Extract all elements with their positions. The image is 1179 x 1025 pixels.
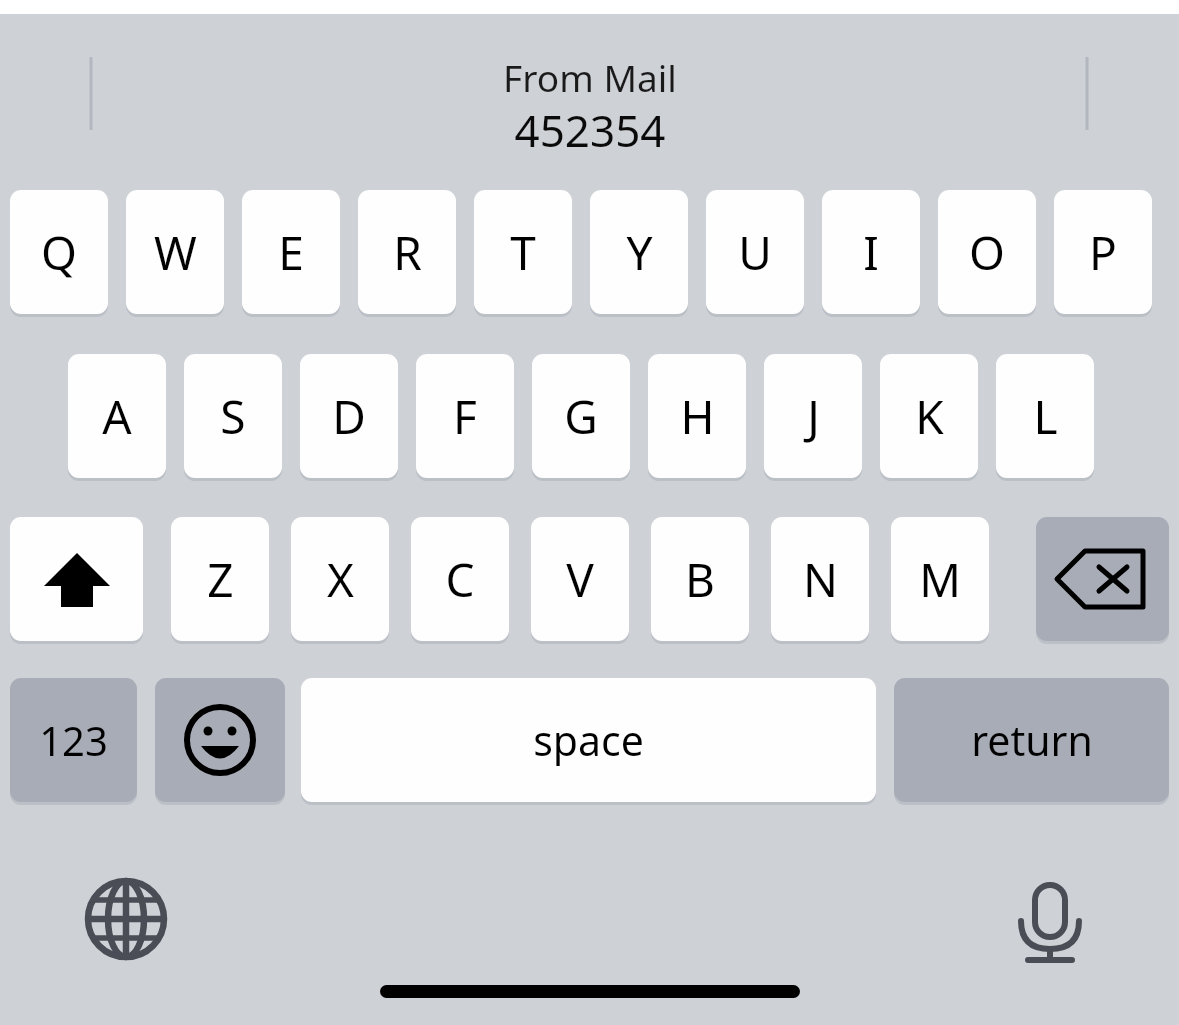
staticText: return [971,712,1093,768]
button[interactable]: R [358,190,456,314]
button[interactable]: I [822,190,920,314]
button[interactable]: Switch keyboard [66,859,186,979]
button[interactable]: Delete [1036,517,1169,641]
staticText: M [919,548,961,611]
button[interactable]: T [474,190,572,314]
staticText: H [680,385,715,448]
button[interactable]: Dictation [990,859,1110,979]
button[interactable]: 123 [10,678,137,802]
button[interactable]: Z [171,517,269,641]
staticText: From Mail [503,52,677,102]
staticText: F [453,385,477,448]
button[interactable]: N [771,517,869,641]
button[interactable]: S [184,354,282,478]
staticText: D [332,385,366,448]
staticText: V [566,548,594,611]
button[interactable]: E [242,190,340,314]
button[interactable]: X [291,517,389,641]
staticText: T [510,221,536,284]
button[interactable]: Emoji [155,678,285,802]
staticText: A [102,385,132,448]
staticText: Z [207,548,234,611]
button[interactable]: From Mail [340,44,840,154]
button[interactable]: H [648,354,746,478]
button[interactable]: K [880,354,978,478]
staticText: K [915,385,944,448]
button[interactable]: L [996,354,1094,478]
button[interactable]: A [68,354,166,478]
button[interactable]: M [891,517,989,641]
button[interactable]: W [126,190,224,314]
button[interactable]: F [416,354,514,478]
button[interactable]: Q [10,190,108,314]
button[interactable]: V [531,517,629,641]
staticText: Y [626,221,653,284]
staticText: B [685,548,715,611]
staticText: O [969,221,1005,284]
button[interactable]: space [301,678,876,802]
staticText: L [1033,385,1058,448]
staticText: N [803,548,838,611]
staticText: U [738,221,772,284]
staticText: J [807,385,820,448]
button[interactable]: Y [590,190,688,314]
staticText: G [564,385,598,448]
staticText: W [154,221,197,284]
button[interactable]: D [300,354,398,478]
staticText: space [533,712,644,768]
staticText: 452354 [514,100,666,160]
button[interactable]: B [651,517,749,641]
button[interactable]: C [411,517,509,641]
staticText: 123 [39,713,108,767]
staticText: S [220,385,246,448]
staticText: I [863,221,879,284]
button[interactable]: Shift [10,517,143,641]
button[interactable]: J [764,354,862,478]
staticText: P [1089,221,1117,284]
button[interactable]: P [1054,190,1152,314]
staticText: Q [41,221,77,284]
staticText: X [327,548,354,611]
staticText: C [445,548,475,611]
button[interactable]: O [938,190,1036,314]
button[interactable]: U [706,190,804,314]
button[interactable]: G [532,354,630,478]
staticText: R [393,221,422,284]
button[interactable]: return [894,678,1169,802]
staticText: E [278,221,304,284]
